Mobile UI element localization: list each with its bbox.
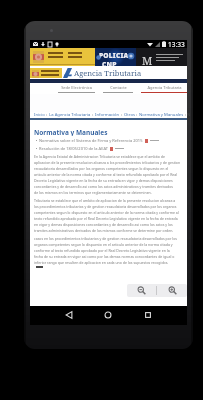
staticText: en vigor y demas disposiciones concordan… (34, 222, 173, 227)
staticText: fecha de su entrada en vigor asi como po… (34, 254, 175, 259)
staticText: los procedimientos tributarios y de gest… (34, 204, 177, 209)
staticText: Normativa y Manuales (34, 128, 108, 136)
staticText: › (45, 112, 49, 118)
staticText: Agencia Tributaria (147, 85, 182, 90)
staticText: En la Agencia Estatal de Administracion … (34, 154, 165, 159)
staticText: de los mismos en los terminos que reglam… (34, 190, 152, 195)
button[interactable]: La Agencia Tributaria (49, 112, 91, 118)
staticText: Decreto Legislativo vigente en la fecha … (34, 178, 173, 183)
button[interactable]: Back (61, 306, 77, 325)
staticText: articulo anterior de la norma citada y c… (34, 172, 178, 177)
button[interactable]: Normativa y Manuales (139, 112, 184, 118)
staticText: 13:33 (168, 40, 185, 48)
staticText: texto refundido aprobado por el Real Dec… (34, 216, 178, 221)
button[interactable]: Otros (124, 112, 135, 118)
button[interactable]: Sede Electrónica (58, 85, 95, 93)
staticText: CNP (102, 60, 117, 66)
staticText: organos competentes segun lo dispuesto e… (34, 242, 173, 247)
staticText: tramites administrativos derivados de lo… (34, 228, 174, 233)
button[interactable]: Recent apps (140, 306, 156, 325)
staticText: competentes segun lo dispuesto en el art… (34, 210, 179, 215)
staticText: casos en los procedimientos tributarios … (34, 236, 177, 241)
staticText: › (184, 112, 187, 118)
staticText: › (135, 112, 139, 118)
staticText: Agencia Tributaria (74, 68, 142, 78)
staticText: recaudatoria desarrollados por los organ… (34, 166, 169, 171)
button[interactable]: Contacte (103, 85, 133, 93)
staticText: POLICIA (99, 51, 129, 60)
button[interactable]: Home (100, 306, 116, 325)
staticText: Normativa sobre el Sistema de Firma y Re… (39, 138, 143, 143)
staticText: › (120, 112, 124, 118)
staticText: Contacte (110, 85, 127, 90)
staticText: Tributaria se establece que el ambito de… (34, 198, 176, 203)
staticText: aplicacion de la presente resolucion alc… (34, 160, 181, 165)
staticText: M (142, 53, 153, 66)
staticText: Resolución de 18/05/2010 de la AEAT (39, 146, 108, 151)
staticText: › (91, 112, 95, 118)
staticText: Sede Electrónica (61, 85, 92, 90)
button[interactable]: Zoom in (157, 284, 187, 297)
button[interactable]: Información (95, 112, 120, 118)
button[interactable]: Inicio (34, 112, 45, 118)
button[interactable]: Zoom out (127, 284, 156, 297)
staticText: conforme al texto refundido aprobado por… (34, 248, 170, 253)
button[interactable]: Agencia Tributaria (141, 85, 187, 93)
staticText: inferior rango que resulten de aplicacio… (34, 260, 169, 265)
staticText: concordantes y de desarrollo asi como lo… (34, 184, 174, 189)
